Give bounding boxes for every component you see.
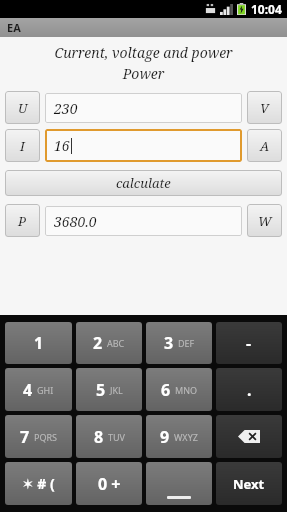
staticText: ✶ # ( [22,474,55,493]
staticText: P [18,212,27,230]
button[interactable]: 16 [45,129,242,162]
button[interactable]: 3 [146,322,212,364]
button[interactable]: 5 [76,368,142,411]
staticText: Next [233,475,265,493]
staticText: TUV [108,431,125,443]
button[interactable]: P [5,204,40,237]
button[interactable]: Next [216,462,282,505]
button[interactable]: V [247,91,282,124]
staticText: 8 [94,426,104,448]
staticText: 1 [34,332,44,354]
button[interactable]: . [216,368,282,411]
staticText: WXYZ [174,431,198,443]
button[interactable]: - [216,322,282,364]
button[interactable]: Space [146,462,212,505]
button[interactable]: 0 + [76,462,142,505]
staticText: 230 [54,99,78,118]
staticText: Current, voltage and power [0,43,287,62]
staticText: 16 [54,136,70,155]
button[interactable]: Delete [216,415,282,458]
staticText: 10:04 [251,1,282,17]
staticText: 3680.0 [54,212,97,231]
button[interactable]: 4 [5,368,72,411]
staticText: EA [7,20,21,35]
staticText: GHI [37,384,54,396]
staticText: 9 [160,426,170,448]
staticText: 0 + [98,473,121,495]
staticText: 2 [93,332,103,354]
staticText: U [18,99,28,117]
staticText: ABC [107,337,125,349]
button[interactable]: A [247,129,282,162]
staticText: 3 [164,332,174,354]
staticText: 5 [96,379,106,401]
button[interactable]: 3680.0 [45,206,242,236]
button[interactable]: 230 [45,93,242,123]
button[interactable]: 8 [76,415,142,458]
button[interactable]: 7 [5,415,72,458]
staticText: I [20,137,25,155]
button[interactable]: 6 [146,368,212,411]
button[interactable]: I [5,129,40,162]
button[interactable]: 1 [5,322,72,364]
staticText: DEF [178,337,195,349]
staticText: . [247,379,252,401]
staticText: MNO [175,384,198,396]
button[interactable]: 9 [146,415,212,458]
staticText: PQRS [34,431,58,443]
button[interactable]: ✶ # ( [5,462,72,505]
staticText: JKL [110,384,123,396]
staticText: 6 [161,379,171,401]
button[interactable]: 2 [76,322,142,364]
button[interactable]: calculate [5,170,282,196]
staticText: 7 [20,426,30,448]
staticText: Power [0,64,287,83]
button[interactable]: W [247,204,282,237]
staticText: W [258,212,272,230]
button[interactable]: U [5,91,40,124]
staticText: A [260,137,270,155]
staticText: - [246,332,252,354]
staticText: calculate [116,174,171,192]
staticText: V [260,99,269,117]
staticText: 4 [23,379,33,401]
